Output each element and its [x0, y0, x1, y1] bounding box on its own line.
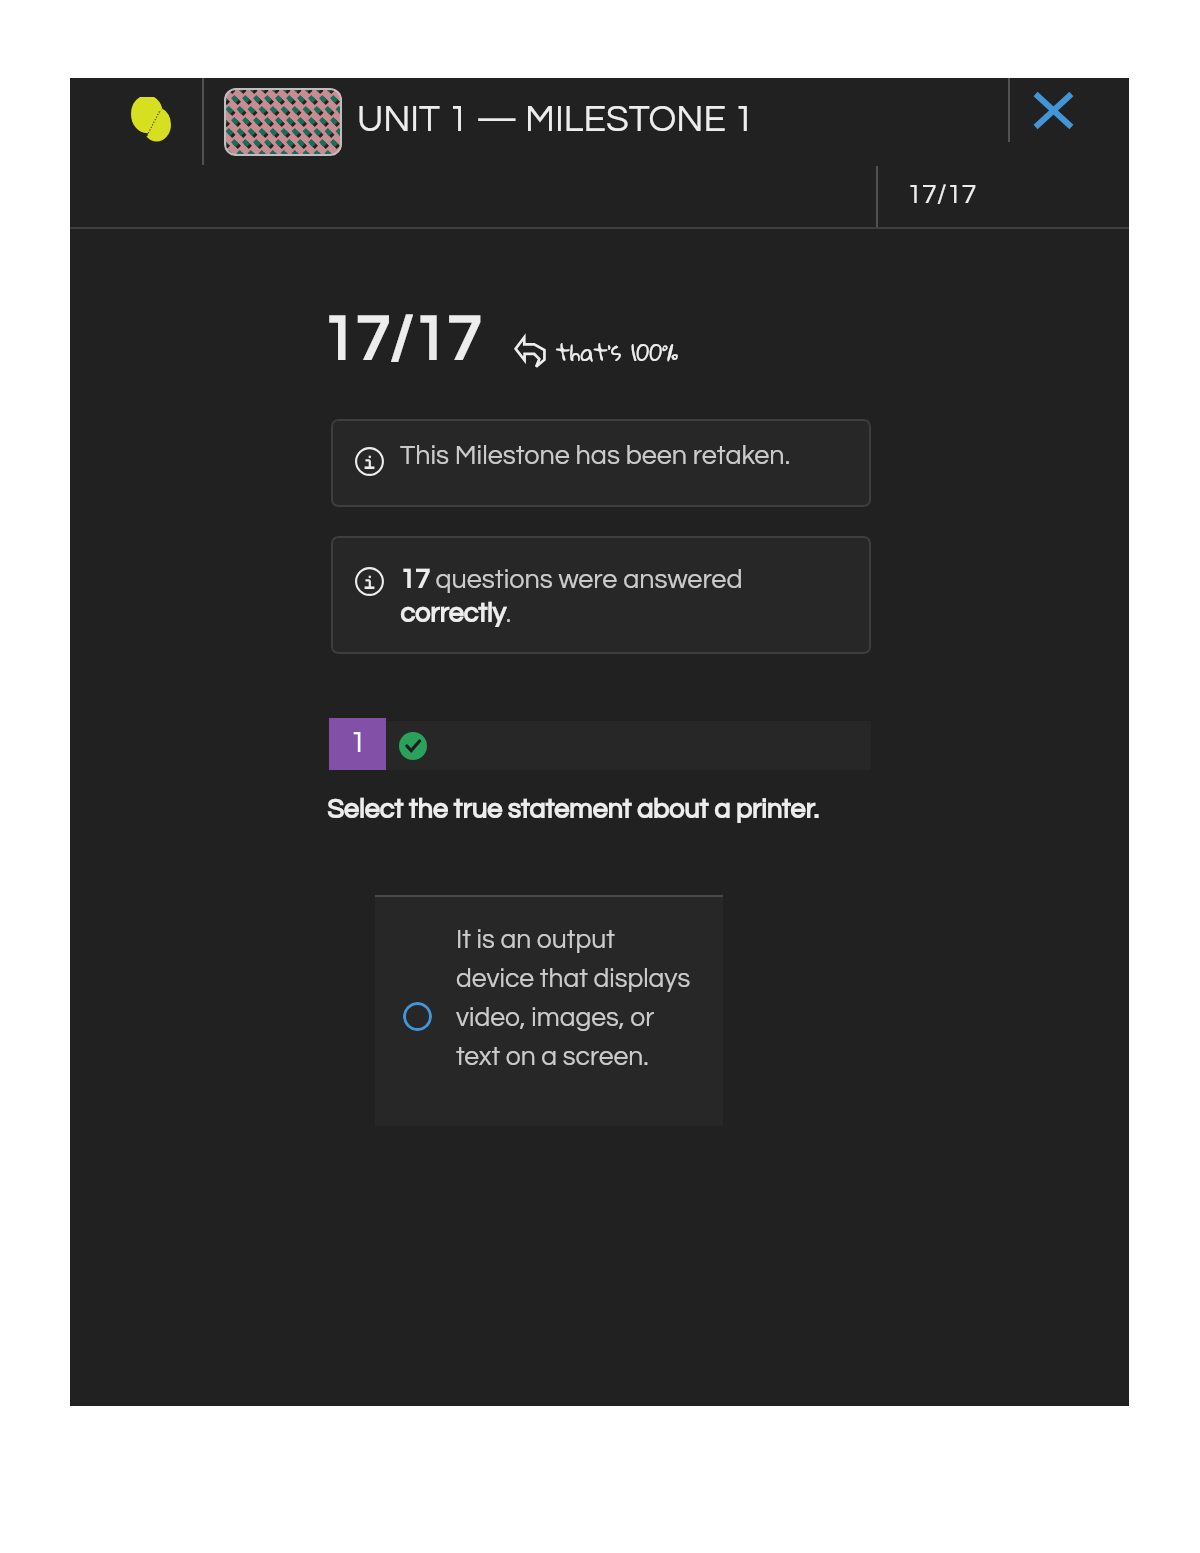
button[interactable]: Sophia home — [131, 94, 171, 143]
button[interactable]: Close — [1010, 78, 1129, 166]
staticText: Select the true statement about a printe… — [327, 796, 819, 824]
other: Answered correctly — [399, 732, 427, 760]
staticText: 17/17 — [907, 181, 977, 209]
button[interactable]: Question 1 — [329, 718, 386, 770]
button[interactable] — [331, 536, 871, 654]
staticText: that's 100% — [556, 330, 679, 374]
staticText: 17/17 — [321, 309, 481, 373]
button[interactable]: Course thumbnail — [224, 88, 342, 156]
staticText: This Milestone has been retaken. — [400, 442, 791, 470]
staticText: It is an output device that displays vid… — [456, 926, 692, 1071]
staticText: 1 — [350, 728, 366, 758]
button[interactable]: It is an output device that displays vid… — [375, 895, 723, 1126]
staticText: 17 questions were answered correctly. — [400, 566, 748, 628]
staticText: UNIT 1 — MILESTONE 1 — [357, 101, 755, 139]
button[interactable] — [331, 419, 871, 507]
